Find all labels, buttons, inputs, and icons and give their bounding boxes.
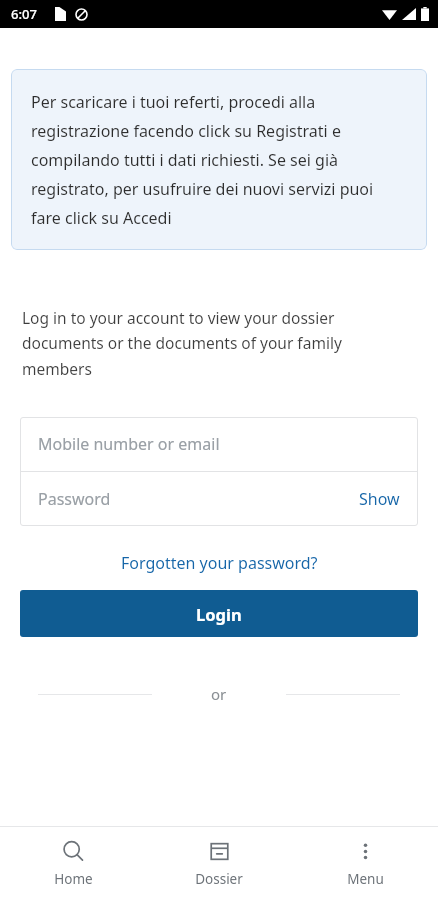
staticText: or [211, 684, 227, 704]
staticText: Mobile number or email [38, 433, 220, 455]
button[interactable]: Login [20, 590, 418, 637]
staticText: Show [359, 488, 400, 510]
button[interactable]: Show [359, 488, 400, 510]
staticText: Home [54, 870, 93, 888]
button[interactable]: Password [20, 472, 418, 526]
staticText: Menu [347, 870, 384, 888]
staticText: Dossier [195, 870, 243, 888]
button[interactable]: Home [0, 827, 146, 900]
staticText: Login [196, 603, 242, 625]
staticText: Per scaricare i tuoi referti, procedi al… [31, 91, 407, 228]
button[interactable]: Forgotten your password? [113, 548, 326, 578]
button[interactable]: Menu [292, 827, 438, 900]
button[interactable]: Dossier [146, 827, 292, 900]
staticText: 6:07 [11, 5, 37, 23]
staticText: Password [38, 488, 111, 510]
button[interactable]: Mobile number or email [20, 417, 418, 471]
staticText: Log in to your account to view your doss… [22, 307, 404, 380]
staticText: Forgotten your password? [121, 552, 318, 574]
